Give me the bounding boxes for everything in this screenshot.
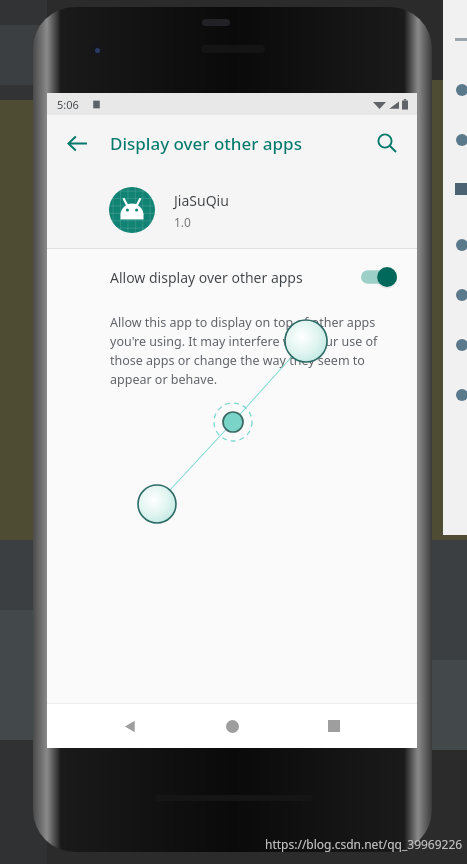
button[interactable]: Search: [367, 123, 407, 163]
button[interactable]: Home: [211, 705, 253, 747]
staticText: Allow display over other apps: [110, 268, 303, 287]
staticText: 5:06: [57, 97, 79, 112]
staticText: https://blog.csdn.net/qq_39969226: [265, 836, 463, 852]
button[interactable]: Back: [57, 123, 97, 163]
staticText: 1.0: [174, 214, 191, 230]
button[interactable]: Allow display over other apps: [47, 249, 417, 305]
button[interactable]: Back: [109, 705, 151, 747]
button[interactable]: Recents: [313, 705, 355, 747]
staticText: JiaSuQiu: [174, 191, 229, 210]
staticText: Display over other apps: [110, 132, 302, 155]
staticText: Allow this app to display on top of othe…: [110, 314, 399, 388]
